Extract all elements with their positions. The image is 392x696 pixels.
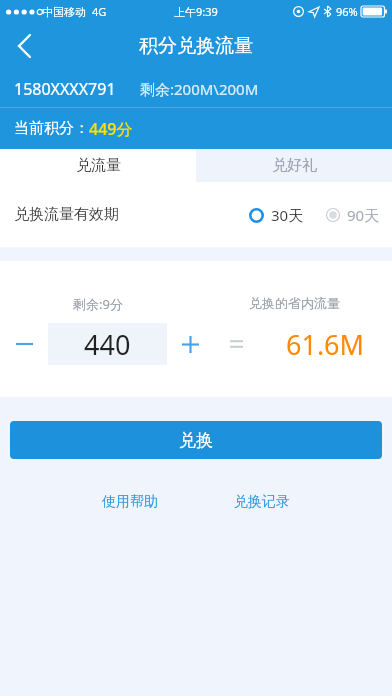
- button[interactable]: 兑流量: [0, 149, 196, 182]
- button[interactable]: 30天: [249, 205, 304, 225]
- staticText: 兑流量: [76, 156, 121, 175]
- staticText: 兑好礼: [272, 156, 317, 175]
- staticText: 兑换流量有效期: [14, 205, 119, 224]
- staticText: 剩余:9分: [73, 295, 123, 313]
- staticText: 90天: [347, 205, 380, 225]
- staticText: 剩余:200M\200M: [140, 79, 259, 99]
- staticText: 中国移动: [42, 5, 86, 19]
- button[interactable]: Decrease: [0, 323, 48, 365]
- button[interactable]: 440: [48, 323, 167, 365]
- staticText: 使用帮助: [102, 493, 158, 511]
- staticText: 兑换的省内流量: [249, 295, 340, 311]
- button[interactable]: 兑好礼: [196, 149, 392, 182]
- staticText: 当前积分：: [14, 119, 89, 138]
- button[interactable]: 兑换记录: [234, 493, 290, 511]
- staticText: 30天: [271, 205, 304, 225]
- staticText: 兑换: [179, 430, 213, 451]
- button[interactable]: 使用帮助: [102, 493, 158, 511]
- button[interactable]: 兑换: [10, 421, 382, 459]
- staticText: 积分兑换流量: [139, 34, 253, 58]
- staticText: 440: [84, 326, 131, 363]
- button[interactable]: 90天: [326, 205, 380, 225]
- staticText: 96%: [336, 4, 358, 19]
- staticText: 1580XXXX791: [14, 78, 116, 100]
- button[interactable]: Back: [0, 22, 48, 70]
- staticText: 449分: [89, 118, 133, 140]
- button[interactable]: Increase: [167, 323, 213, 365]
- staticText: 兑换记录: [234, 493, 290, 511]
- staticText: 上午9:39: [174, 4, 218, 19]
- staticText: 61.6M: [286, 326, 365, 363]
- staticText: 4G: [92, 4, 107, 19]
